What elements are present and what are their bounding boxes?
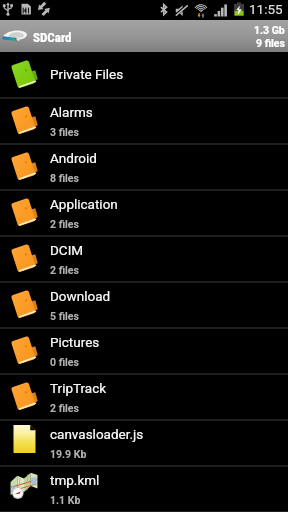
staticText: tmp.kml — [50, 472, 100, 488]
staticText: 1.3 Gb — [254, 24, 285, 36]
staticText: 9 files — [256, 37, 285, 49]
staticText: Pictures — [50, 334, 100, 350]
staticText: Android — [50, 150, 97, 166]
staticText: Application — [50, 196, 118, 212]
staticText: 2 files — [50, 218, 79, 230]
button[interactable]: Alarms — [0, 98, 288, 144]
button[interactable]: Pictures — [0, 328, 288, 374]
button[interactable]: Application — [0, 190, 288, 236]
button[interactable]: canvasloader.js — [0, 420, 288, 466]
staticText: 3 files — [50, 126, 79, 138]
staticText: 8 files — [50, 172, 79, 184]
staticText: 5 files — [50, 310, 79, 322]
button[interactable]: DCIM — [0, 236, 288, 282]
staticText: Alarms — [50, 104, 93, 120]
staticText: TripTrack — [50, 380, 107, 396]
button[interactable]: Download — [0, 282, 288, 328]
button[interactable]: SDCard — [0, 20, 288, 52]
staticText: 2 files — [50, 402, 79, 414]
staticText: 1.1 Kb — [50, 494, 81, 506]
button[interactable]: Android — [0, 144, 288, 190]
staticText: 2 files — [50, 264, 79, 276]
staticText: 0 files — [50, 356, 79, 368]
staticText: Download — [50, 288, 111, 304]
staticText: 19.9 Kb — [50, 448, 87, 460]
staticText: DCIM — [50, 242, 84, 258]
button[interactable]: tmp.kml — [0, 466, 288, 512]
button[interactable]: TripTrack — [0, 374, 288, 420]
button[interactable]: Private Files — [0, 52, 288, 98]
staticText: canvasloader.js — [50, 426, 144, 442]
staticText: Private Files — [50, 66, 124, 82]
staticText: SDCard — [33, 30, 72, 45]
staticText: 11:55 — [249, 1, 283, 17]
